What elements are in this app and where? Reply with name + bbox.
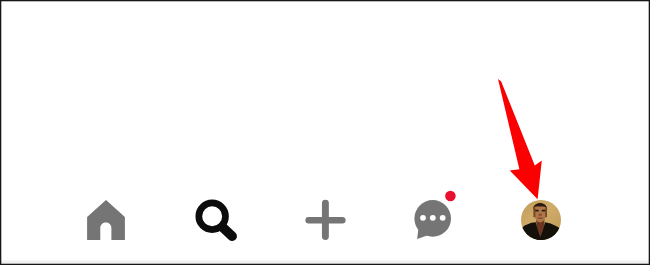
button[interactable]: Profile [521,200,561,240]
button[interactable]: Messages [408,188,464,244]
button[interactable]: Search [190,194,242,246]
button[interactable]: Create new post [300,194,350,244]
button[interactable]: Home [82,194,130,242]
